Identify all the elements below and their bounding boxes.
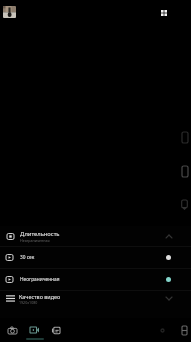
staticText: Длительность xyxy=(20,230,60,238)
button[interactable]: Photo xyxy=(5,319,19,341)
button[interactable]: Expand xyxy=(162,292,176,305)
button[interactable]: More modes xyxy=(49,319,63,341)
button[interactable]: Неограниченная xyxy=(0,269,191,290)
button[interactable]: Длительность xyxy=(0,226,191,246)
button[interactable]: Video xyxy=(27,319,41,341)
button[interactable]: Gallery xyxy=(3,6,16,18)
button[interactable]: 30 сек xyxy=(0,247,191,268)
button[interactable]: Grid xyxy=(155,4,172,21)
staticText: 1920x1080 xyxy=(19,300,38,305)
staticText: Неограниченная xyxy=(20,276,166,283)
button[interactable]: Качество видео xyxy=(0,291,191,318)
staticText: Качество видео xyxy=(19,293,61,300)
button[interactable]: Aspect ratio xyxy=(178,320,190,340)
button[interactable]: Camera mode xyxy=(182,166,188,177)
staticText: 30 сек xyxy=(20,254,166,261)
staticText: Неограниченная xyxy=(20,238,50,243)
button[interactable]: Collapse xyxy=(162,229,176,243)
button[interactable]: Camera mode xyxy=(182,132,188,143)
button[interactable]: Settings xyxy=(156,320,168,340)
button[interactable]: Flip camera xyxy=(181,200,188,210)
